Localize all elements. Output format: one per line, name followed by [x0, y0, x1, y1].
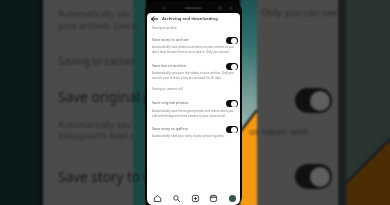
staticText: Save original p [58, 87, 148, 106]
staticText: Save story to archive [152, 37, 189, 42]
staticText: os taken with [249, 125, 310, 138]
button[interactable]: Reels [207, 192, 220, 205]
staticText: Archiving and downloading [162, 16, 218, 22]
button[interactable]: Back [147, 13, 162, 25]
button[interactable]: Back [147, 13, 240, 25]
button[interactable]: Profile [226, 192, 239, 205]
button[interactable]: Save story to archive [147, 35, 240, 45]
staticText: Automatically sav [58, 119, 131, 131]
staticText: Automatically save the original photos a… [152, 109, 235, 118]
staticText: Saving to archive [152, 26, 177, 30]
button[interactable]: Search [170, 192, 183, 205]
button[interactable]: Create [189, 192, 202, 205]
staticText: Automatically save your live videos to y… [152, 71, 235, 80]
staticText: Automatically sav [58, 8, 131, 20]
staticText: Automatically save photos and videos to … [152, 45, 235, 54]
staticText: Save story to gallery [152, 126, 188, 131]
button[interactable]: Save live to archive [147, 61, 240, 71]
button[interactable]: Save original photos [147, 98, 240, 108]
staticText: your archive. Live v [58, 20, 137, 32]
button[interactable]: Home [151, 192, 164, 205]
staticText: Automatically save your story to your ph… [152, 134, 235, 138]
staticText: Save original photos [152, 100, 189, 105]
staticText: Instagram's feed c [58, 130, 134, 142]
staticText: Saving to camer [58, 54, 135, 68]
staticText: Save live to archive [152, 63, 186, 68]
button[interactable]: Save story to gallery [147, 124, 240, 134]
staticText: Save story to g [58, 167, 148, 186]
staticText: Saving to camera roll [152, 87, 183, 91]
staticText: Only you can see [261, 6, 338, 19]
